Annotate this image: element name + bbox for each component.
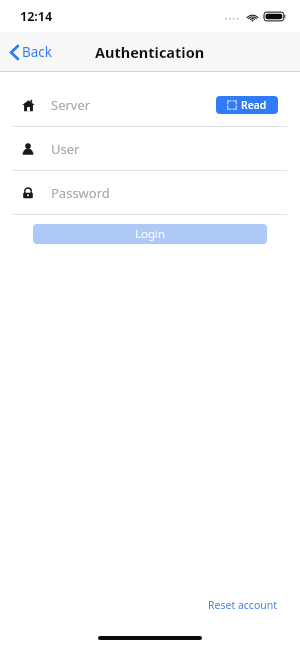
staticText: Read: [241, 98, 267, 112]
button[interactable]: Login: [33, 224, 267, 244]
button[interactable]: Password: [0, 171, 300, 214]
button[interactable]: Reset account: [206, 597, 280, 613]
staticText: Server: [51, 96, 91, 114]
button[interactable]: Back: [6, 40, 57, 64]
staticText: Reset account: [208, 598, 278, 612]
button[interactable]: User: [0, 127, 300, 170]
staticText: Login: [135, 226, 166, 242]
staticText: Password: [51, 184, 110, 202]
staticText: 12:14: [20, 8, 53, 25]
staticText: Back: [22, 43, 53, 61]
button[interactable]: Server: [0, 83, 300, 126]
staticText: Authentication: [95, 42, 205, 62]
button[interactable]: Read: [216, 96, 278, 114]
staticText: User: [51, 140, 80, 158]
